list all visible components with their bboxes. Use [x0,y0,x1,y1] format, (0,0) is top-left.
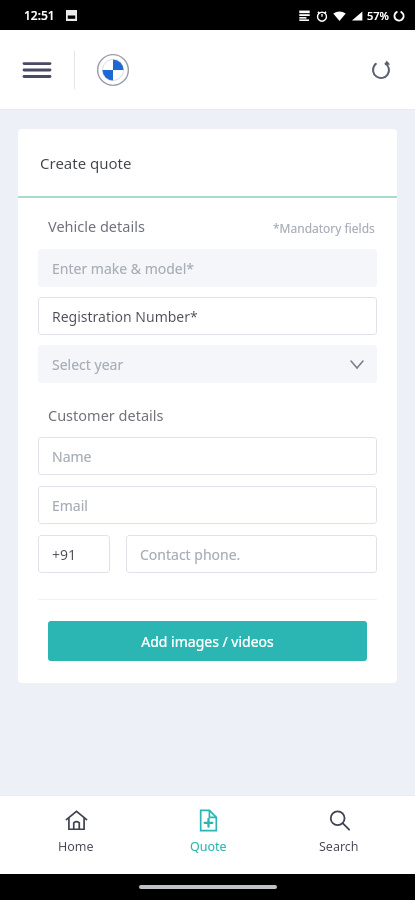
staticText: Contact phone. [140,545,241,564]
button[interactable]: Name [38,437,377,475]
button[interactable]: Search [284,796,394,874]
staticText: Enter make & model* [52,259,195,278]
staticText: Create quote [40,153,132,173]
staticText: Search [319,838,359,855]
staticText: Quote [190,838,227,855]
button[interactable]: Quote [153,796,263,874]
staticText: Add images / videos [141,632,274,651]
staticText: Select year [52,355,124,374]
staticText: Email [52,496,88,515]
button[interactable]: Open navigation menu [18,55,56,85]
button[interactable]: Home [21,796,131,874]
staticText: Name [52,447,92,466]
button[interactable]: Registration Number* [38,297,377,335]
button[interactable]: +91 [38,535,110,573]
staticText: 12:51 [24,7,55,23]
button[interactable]: Refresh [365,54,397,86]
staticText: *Mandatory fields [273,220,375,236]
button[interactable]: Select year [38,345,377,383]
staticText: Home [58,838,94,855]
staticText: Vehicle details [48,216,145,236]
button[interactable]: Add images / videos [48,621,367,661]
staticText: +91 [52,545,77,564]
button[interactable]: Email [38,486,377,524]
button[interactable]: Contact phone. [126,535,377,573]
button[interactable]: Enter make & model* [38,249,377,287]
staticText: 57% [367,8,389,23]
staticText: Customer details [48,405,164,425]
button[interactable]: Create quote [18,129,397,196]
staticText: Registration Number* [52,307,198,326]
